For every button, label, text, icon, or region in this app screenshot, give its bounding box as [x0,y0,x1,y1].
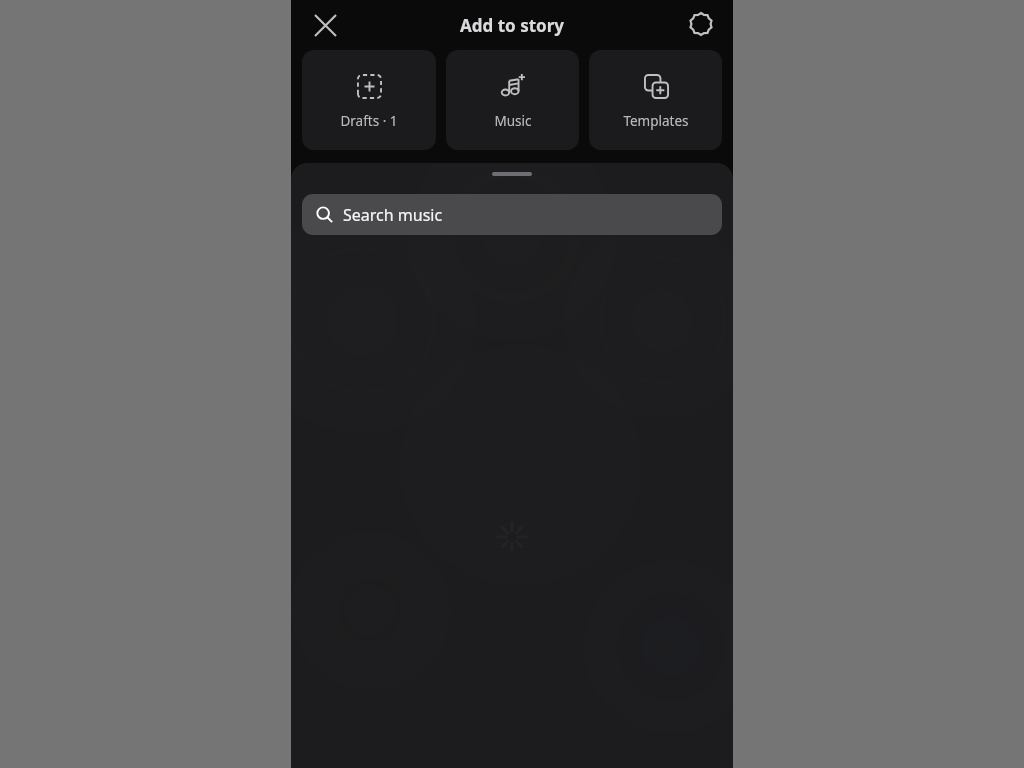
button[interactable]: Drafts · 1 [302,50,436,150]
staticText: Add to story [460,14,564,37]
button[interactable]: Templates [589,50,722,150]
button[interactable]: Close [305,5,345,45]
button[interactable]: Search music [302,194,722,235]
button[interactable]: Music [446,50,579,150]
staticText: Music [494,112,532,130]
button[interactable]: Settings [681,4,721,44]
staticText: Templates [623,112,689,130]
staticText: Drafts · 1 [340,112,398,130]
staticText: Search music [343,204,443,226]
